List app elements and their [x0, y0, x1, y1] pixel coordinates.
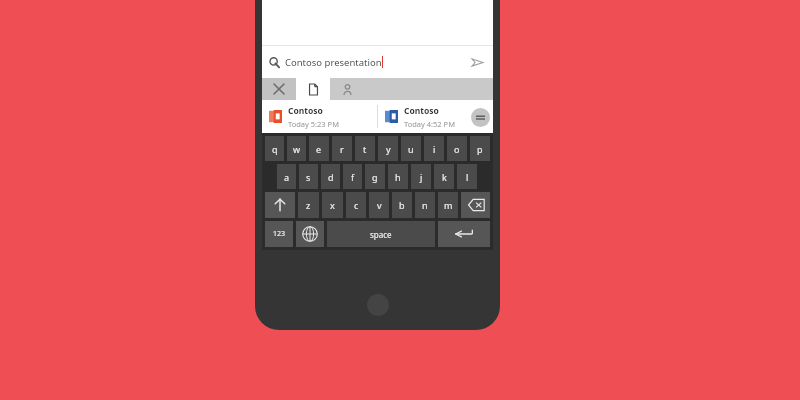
staticText: r — [340, 143, 344, 155]
staticText: q — [272, 143, 278, 155]
button[interactable]: Send — [467, 52, 487, 72]
button[interactable]: e — [309, 136, 329, 161]
button[interactable]: h — [388, 164, 408, 189]
staticText: Contoso Presentation — [404, 105, 493, 117]
staticText: h — [395, 171, 401, 183]
staticText: 123 — [273, 229, 286, 239]
button[interactable]: w — [287, 136, 306, 161]
staticText: i — [433, 143, 436, 155]
staticText: f — [351, 171, 355, 183]
button[interactable]: Contoso Presentation — [378, 100, 493, 133]
staticText: k — [442, 171, 447, 183]
staticText: m — [444, 199, 453, 211]
button[interactable]: l — [457, 164, 477, 189]
button[interactable]: More — [471, 108, 490, 127]
button[interactable]: v — [369, 192, 389, 218]
staticText: Today 4:52 PM — [404, 119, 455, 129]
button[interactable]: y — [378, 136, 398, 161]
staticText: a — [284, 171, 290, 183]
button[interactable]: Enter — [438, 221, 490, 247]
staticText: z — [306, 199, 311, 211]
staticText: c — [354, 199, 359, 211]
staticText: v — [377, 199, 382, 211]
staticText: l — [466, 171, 469, 183]
staticText: t — [363, 143, 367, 155]
button[interactable]: 123 — [265, 221, 293, 247]
staticText: j — [420, 171, 423, 183]
button[interactable]: i — [424, 136, 444, 161]
button[interactable]: Close — [262, 78, 296, 100]
staticText: s — [306, 171, 311, 183]
button[interactable]: b — [392, 192, 412, 218]
button[interactable]: Shift — [265, 192, 295, 218]
button[interactable]: u — [401, 136, 421, 161]
button[interactable]: space — [327, 221, 435, 247]
staticText: o — [454, 143, 460, 155]
staticText: space — [370, 229, 392, 240]
button[interactable]: p — [470, 136, 490, 161]
staticText: Contoso presentation — [285, 56, 382, 69]
button[interactable]: n — [415, 192, 435, 218]
button[interactable]: Language — [296, 221, 324, 247]
button[interactable]: m — [438, 192, 458, 218]
staticText: g — [372, 171, 378, 183]
staticText: n — [422, 199, 428, 211]
staticText: y — [386, 143, 391, 155]
staticText: d — [328, 171, 334, 183]
staticText: b — [399, 199, 405, 211]
button[interactable]: x — [322, 192, 343, 218]
button[interactable]: Home — [367, 294, 389, 316]
button[interactable]: a — [277, 164, 296, 189]
button[interactable]: s — [299, 164, 318, 189]
button[interactable]: People — [330, 78, 364, 100]
button[interactable]: f — [343, 164, 362, 189]
button[interactable]: r — [332, 136, 352, 161]
staticText: Today 5:23 PM — [288, 119, 339, 129]
button[interactable]: Contoso presentation — [262, 46, 493, 78]
button[interactable]: q — [265, 136, 284, 161]
staticText: p — [477, 143, 483, 155]
button[interactable]: z — [298, 192, 319, 218]
button[interactable]: o — [447, 136, 467, 161]
button[interactable]: Files — [296, 78, 330, 100]
staticText: w — [293, 143, 301, 155]
button[interactable]: k — [434, 164, 454, 189]
staticText: Contoso Presentation — [288, 105, 377, 117]
button[interactable]: Backspace — [461, 192, 490, 218]
button[interactable]: g — [365, 164, 385, 189]
staticText: x — [330, 199, 335, 211]
button[interactable]: t — [355, 136, 375, 161]
button[interactable]: c — [346, 192, 366, 218]
button[interactable]: Contoso Presentation — [262, 100, 377, 133]
button[interactable]: d — [321, 164, 340, 189]
staticText: u — [408, 143, 414, 155]
staticText: e — [316, 143, 322, 155]
button[interactable]: j — [411, 164, 431, 189]
